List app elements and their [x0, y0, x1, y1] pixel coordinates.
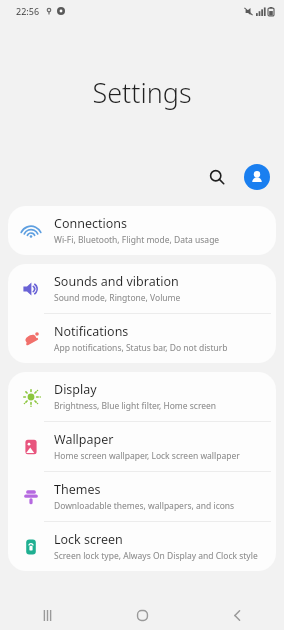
staticText: Wallpaper [54, 431, 114, 448]
staticText: 22:56 [16, 5, 40, 17]
button[interactable]: Search [200, 160, 234, 194]
button[interactable]: Themes [8, 472, 276, 521]
button[interactable]: Recents [27, 600, 67, 630]
staticText: Wi-Fi, Bluetooth, Flight mode, Data usag… [54, 234, 220, 246]
staticText: App notifications, Status bar, Do not di… [54, 342, 228, 354]
staticText: Settings [0, 74, 284, 111]
button[interactable]: Lock screen [8, 522, 276, 571]
staticText: Notifications [54, 323, 129, 340]
button[interactable]: Connections [8, 206, 276, 255]
staticText: Lock screen [54, 531, 123, 548]
button[interactable]: Back [217, 600, 257, 630]
staticText: Screen lock type, Always On Display and … [54, 550, 258, 562]
staticText: Downloadable themes, wallpapers, and ico… [54, 500, 235, 512]
staticText: Home screen wallpaper, Lock screen wallp… [54, 450, 240, 462]
staticText: Brightness, Blue light filter, Home scre… [54, 400, 217, 412]
staticText: Connections [54, 215, 127, 232]
button[interactable]: Notifications [8, 314, 276, 363]
button[interactable]: Home [122, 600, 162, 630]
button[interactable]: Sounds and vibration [8, 264, 276, 313]
button[interactable]: Wallpaper [8, 422, 276, 471]
button[interactable]: Account [244, 164, 270, 190]
button[interactable]: Display [8, 372, 276, 421]
staticText: Display [54, 381, 97, 398]
staticText: Sound mode, Ringtone, Volume [54, 292, 181, 304]
staticText: Themes [54, 481, 101, 498]
staticText: Sounds and vibration [54, 273, 179, 290]
